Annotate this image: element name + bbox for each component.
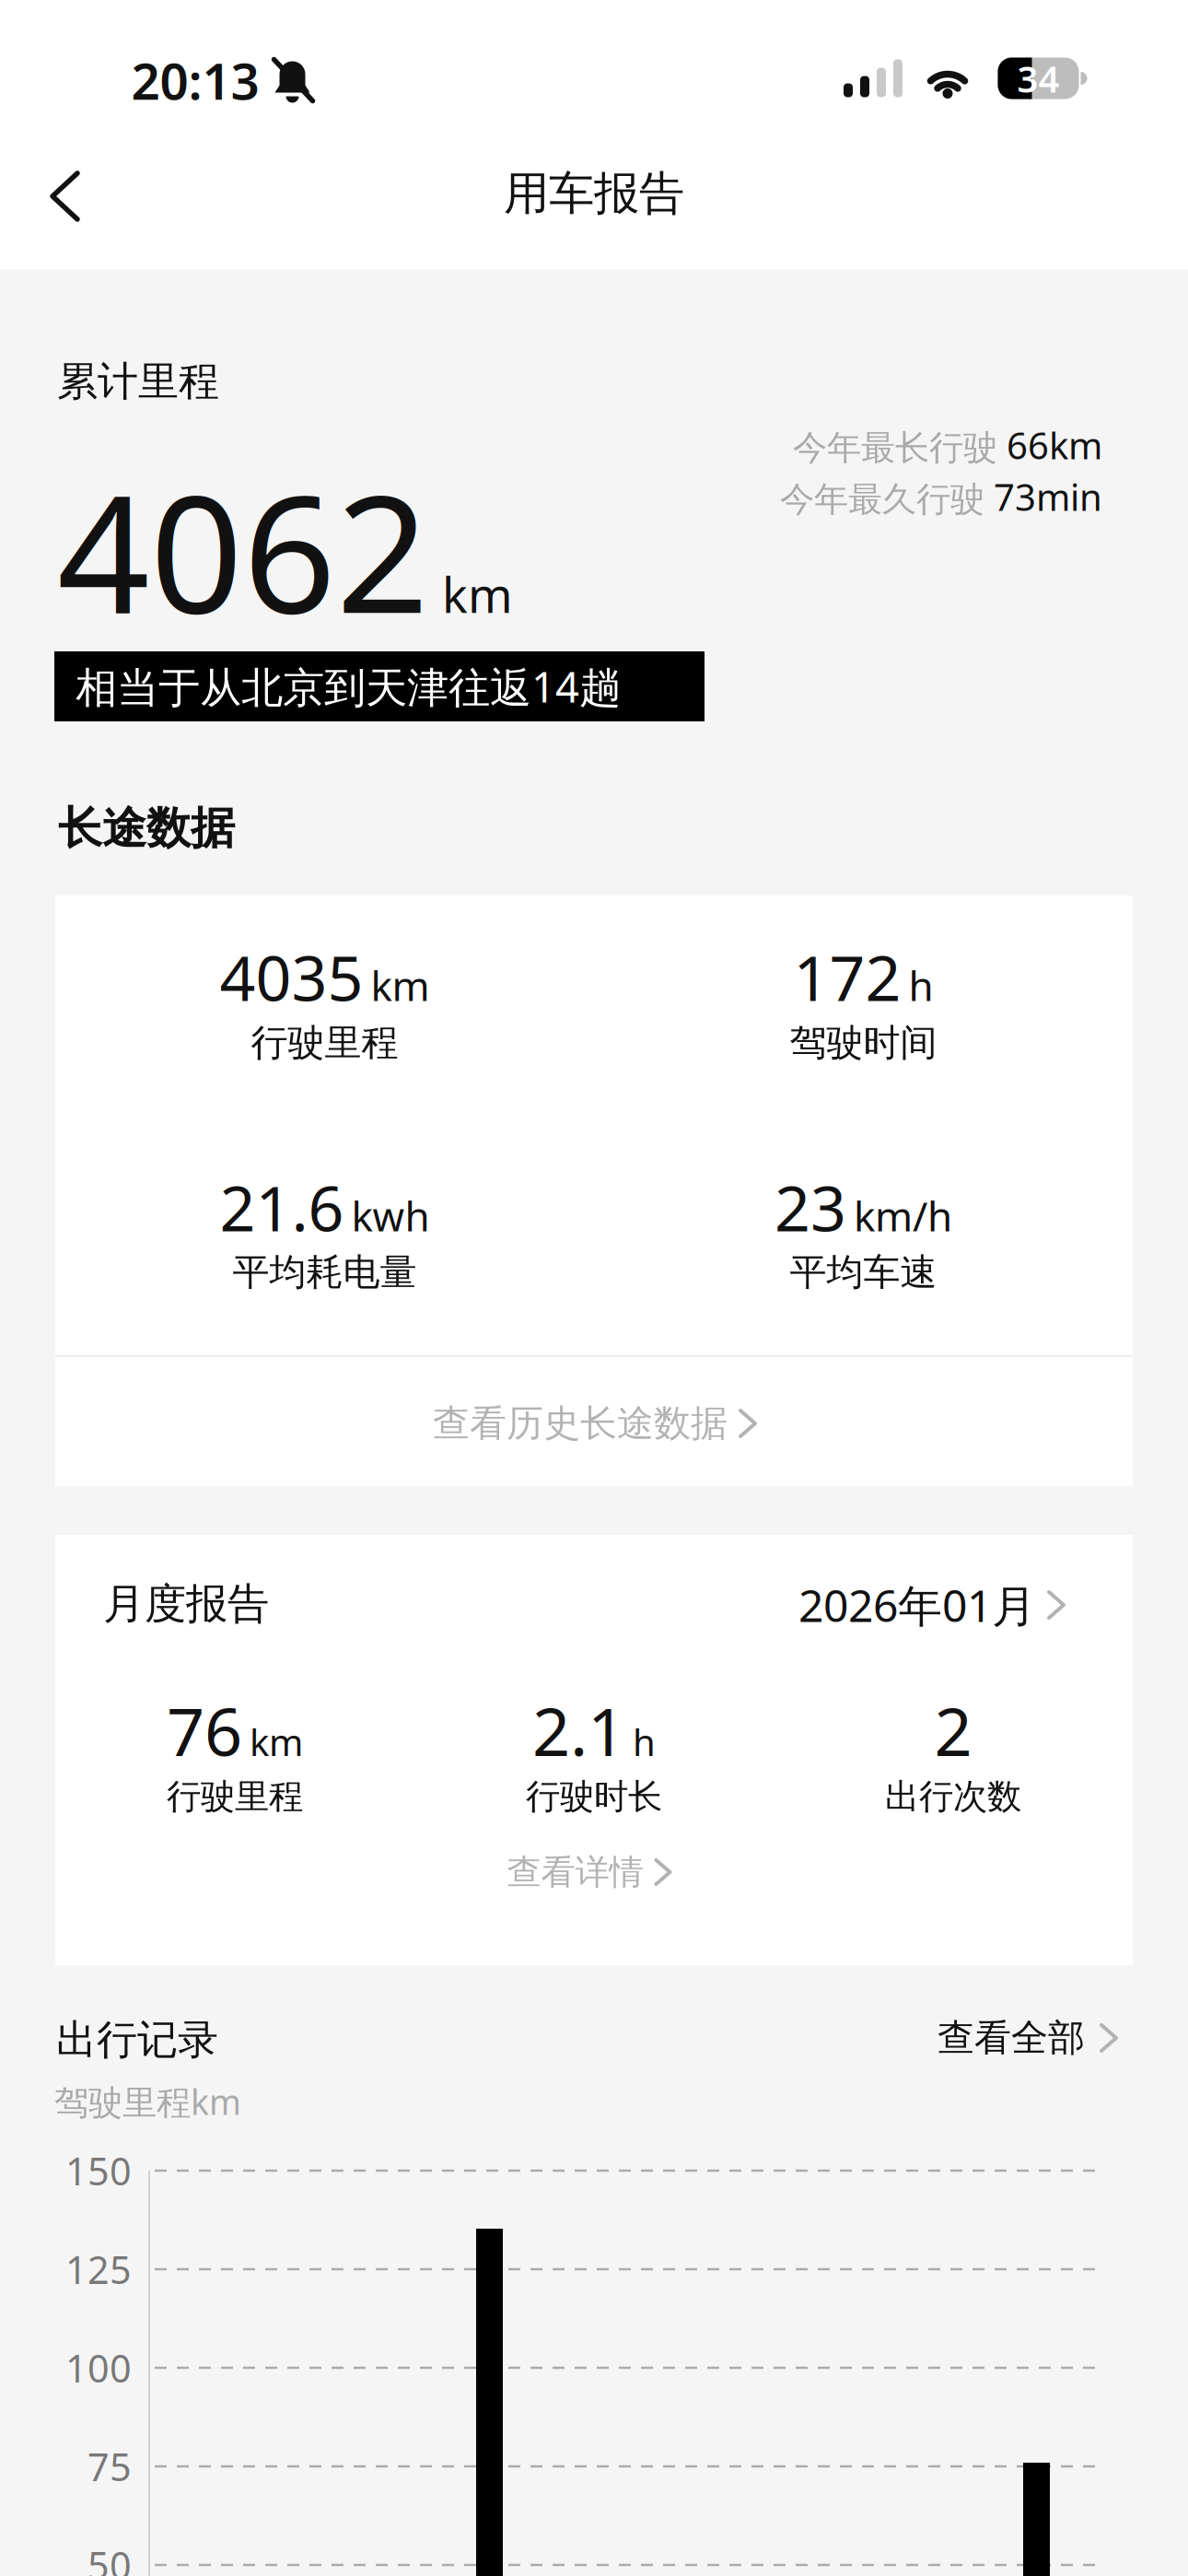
staticText: 100 [65, 2343, 132, 2393]
staticText: 50 [87, 2540, 132, 2576]
staticText: 23 [775, 1165, 846, 1248]
staticText: 125 [65, 2244, 132, 2295]
staticText: 4062 [57, 442, 429, 658]
staticText: h [908, 958, 933, 1012]
staticText: km [371, 958, 430, 1012]
staticText: 行驶里程 [251, 1020, 398, 1066]
staticText: 150 [65, 2145, 132, 2196]
staticText: 66km [1007, 420, 1102, 469]
staticText: km [442, 563, 513, 626]
staticText: 76 [167, 1686, 242, 1774]
staticText: kwh [351, 1189, 430, 1242]
staticText: 查看详情 [507, 1851, 643, 1893]
staticText: km [250, 1717, 303, 1766]
staticText: 查看全部 [938, 2015, 1085, 2061]
button[interactable]: 查看历史长途数据 [55, 1359, 1133, 1488]
button[interactable]: 查看详情 [312, 1831, 865, 1914]
staticText: km/h [854, 1189, 952, 1242]
staticText: 行驶里程 [167, 1775, 303, 1818]
staticText: 平均耗电量 [233, 1250, 417, 1295]
staticText: 34 [1017, 54, 1060, 103]
button[interactable]: 查看全部 [938, 2015, 1116, 2061]
staticText: 驾驶里程km [54, 2079, 241, 2124]
staticText: 驾驶时间 [790, 1020, 937, 1066]
staticText: 行驶时长 [526, 1775, 662, 1818]
staticText: 20:13 [131, 47, 259, 114]
staticText: 累计里程 [57, 357, 219, 406]
staticText: 73min [994, 472, 1102, 521]
button[interactable]: 2026年01月 [798, 1576, 1064, 1634]
staticText: 2.1 [532, 1686, 625, 1774]
staticText: 21.6 [220, 1165, 344, 1248]
staticText: 2 [934, 1686, 972, 1774]
staticText: 用车报告 [504, 166, 684, 221]
staticText: 出行记录 [56, 2015, 218, 2065]
button[interactable]: Back [18, 150, 111, 242]
staticText: 4035 [220, 935, 363, 1018]
staticText: 查看历史长途数据 [433, 1401, 728, 1446]
staticText: 今年最长行驶 [793, 427, 997, 469]
staticText: 2026年01月 [798, 1576, 1036, 1634]
staticText: 长途数据 [58, 801, 235, 855]
staticText: h [633, 1717, 656, 1766]
staticText: 月度报告 [103, 1578, 269, 1630]
staticText: 平均车速 [790, 1250, 937, 1295]
staticText: 今年最久行驶 [780, 478, 984, 521]
staticText: 相当于从北京到天津往返14趟 [76, 659, 621, 714]
staticText: 出行次数 [885, 1775, 1021, 1818]
staticText: 75 [87, 2441, 132, 2492]
staticText: 172 [793, 935, 901, 1018]
